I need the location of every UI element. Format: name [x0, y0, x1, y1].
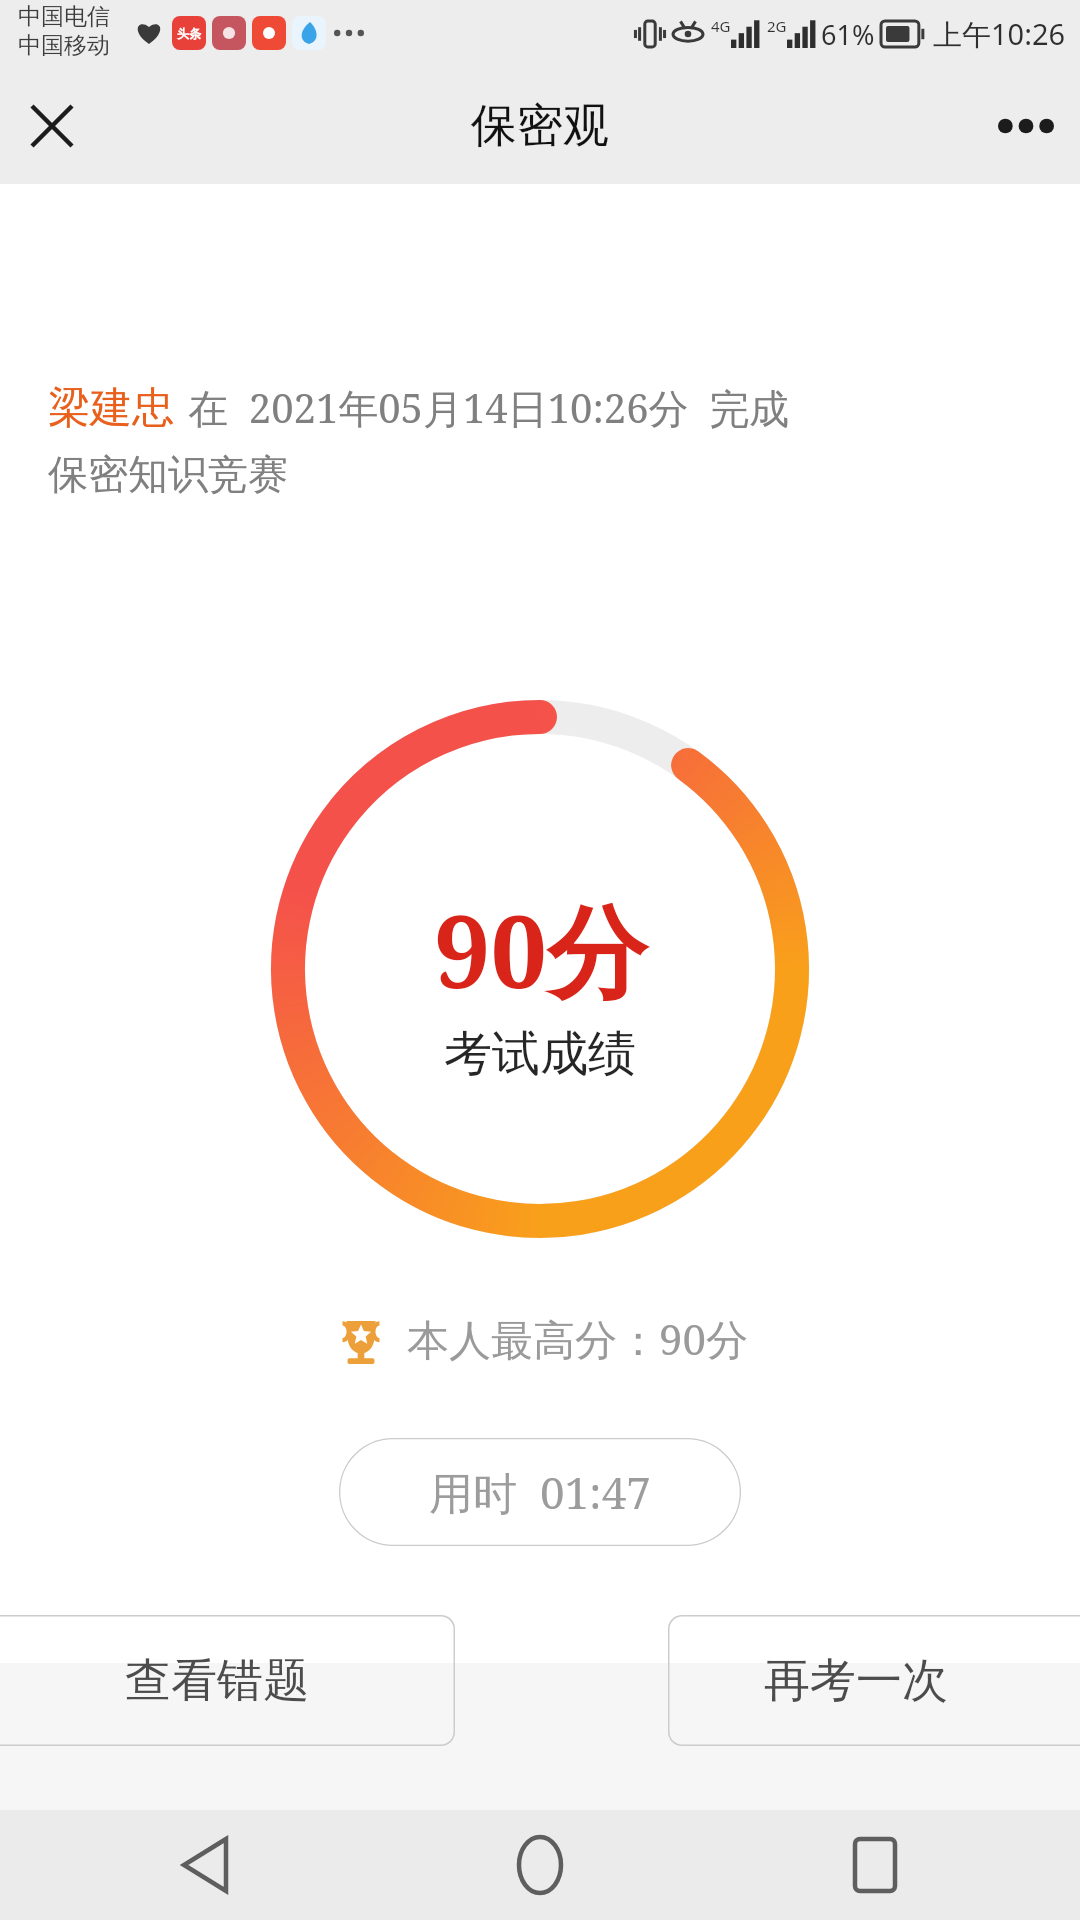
staticText: 90分	[434, 881, 647, 1018]
staticText: 保密知识竞赛	[48, 449, 288, 499]
staticText: 头条	[177, 26, 201, 41]
staticText: 中国电信	[18, 2, 110, 31]
staticText: 保密观	[471, 97, 609, 155]
button[interactable]: 再考一次	[668, 1615, 1080, 1746]
button[interactable]: Home	[485, 1810, 595, 1920]
staticText: 梁建忠	[48, 382, 174, 435]
button[interactable]: Recent apps	[820, 1810, 930, 1920]
staticText: 在 2021年05月14日10:26分 完成	[188, 380, 790, 435]
staticText: 61%	[821, 16, 875, 53]
staticText: 再考一次	[764, 1652, 948, 1710]
staticText: 本人最高分：90分	[407, 1310, 748, 1367]
button[interactable]: Back	[150, 1810, 260, 1920]
button[interactable]: 查看错题	[0, 1615, 455, 1746]
staticText: 用时 01:47	[429, 1462, 651, 1522]
button[interactable]: Close	[14, 88, 90, 164]
button[interactable]: More options	[986, 86, 1066, 166]
button[interactable]: 用时 01:47	[339, 1438, 741, 1546]
staticText: 上午10:26	[933, 14, 1066, 54]
staticText: 2G	[767, 16, 787, 36]
staticText: 4G	[711, 16, 731, 36]
staticText: 查看错题	[125, 1652, 309, 1710]
staticText: 考试成绩	[444, 1024, 636, 1084]
staticText: 中国移动	[18, 31, 110, 60]
